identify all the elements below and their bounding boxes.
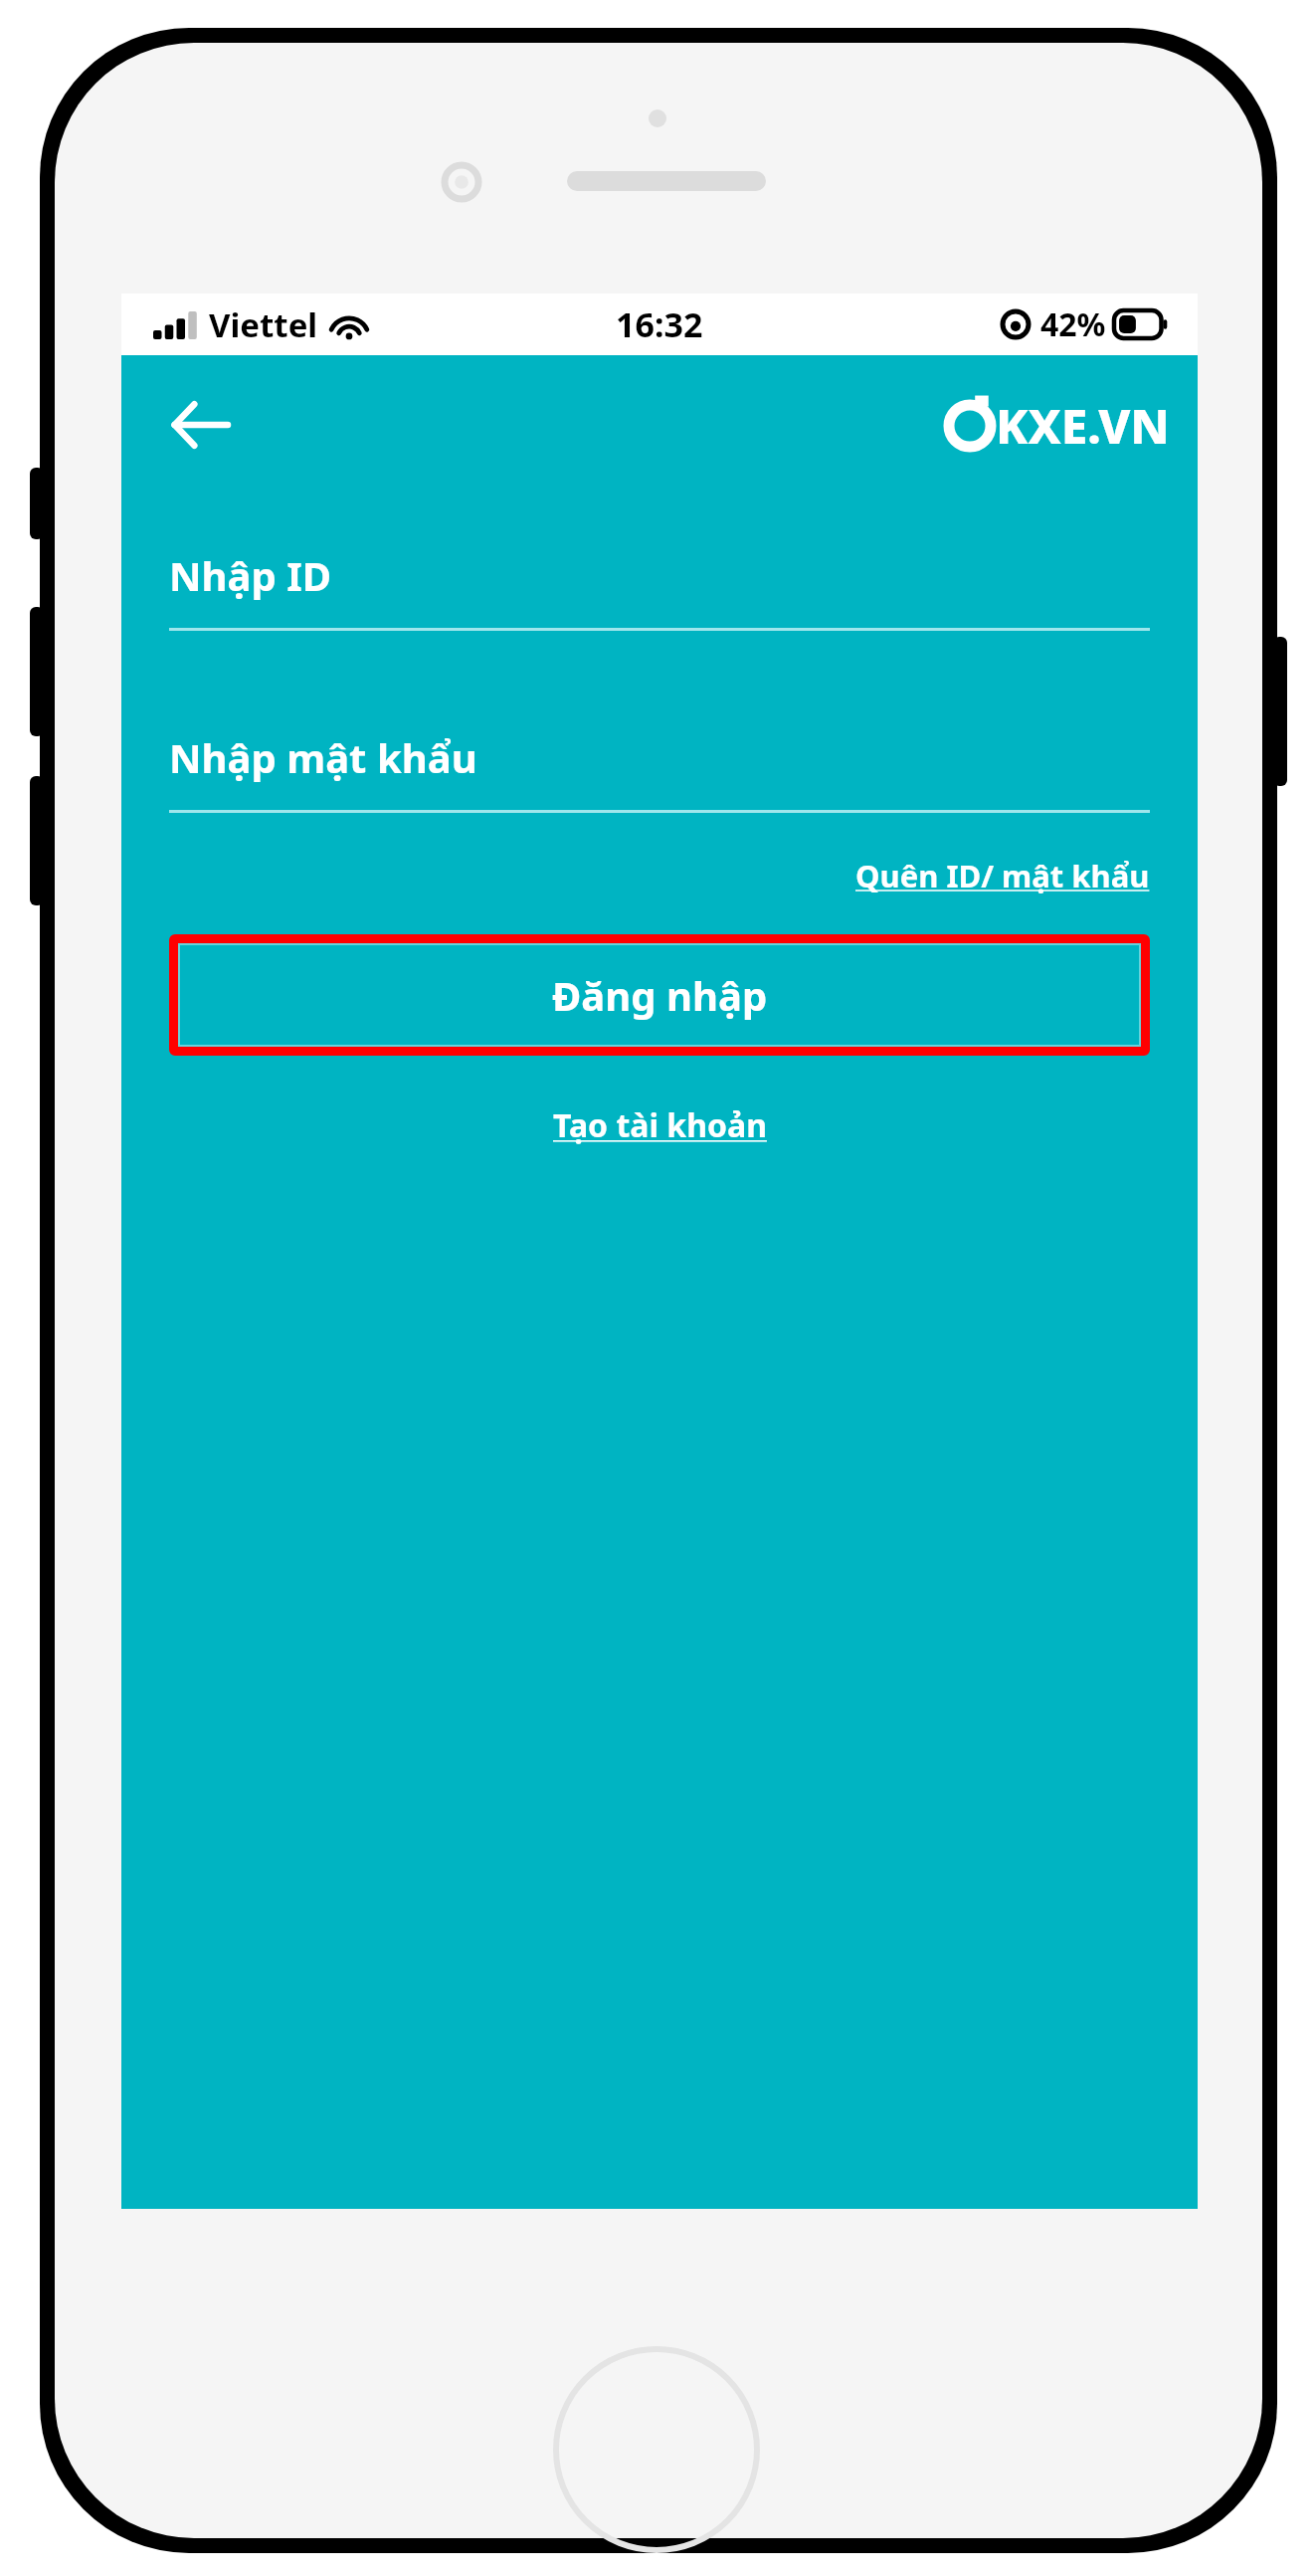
button[interactable]: Nhập mật khẩu (169, 730, 1150, 813)
staticText: Tạo tài khoản (553, 1103, 767, 1147)
button[interactable]: Đăng nhập (178, 943, 1141, 1047)
staticText: Nhập ID (169, 548, 331, 602)
staticText: Viettel (209, 302, 318, 347)
button[interactable]: Nhập ID (169, 548, 1150, 631)
staticText: Nhập mật khẩu (169, 730, 477, 784)
staticText: KXE.VN (996, 393, 1170, 458)
button[interactable]: Quên ID/ mật khẩu (855, 851, 1150, 900)
staticText: 42% (1040, 302, 1106, 346)
staticText: 16:32 (616, 301, 703, 347)
staticText: Đăng nhập (552, 968, 768, 1022)
button[interactable]: Tạo tài khoản (553, 1099, 767, 1151)
button[interactable]: Back (151, 377, 247, 473)
staticText: Quên ID/ mật khẩu (855, 855, 1150, 896)
